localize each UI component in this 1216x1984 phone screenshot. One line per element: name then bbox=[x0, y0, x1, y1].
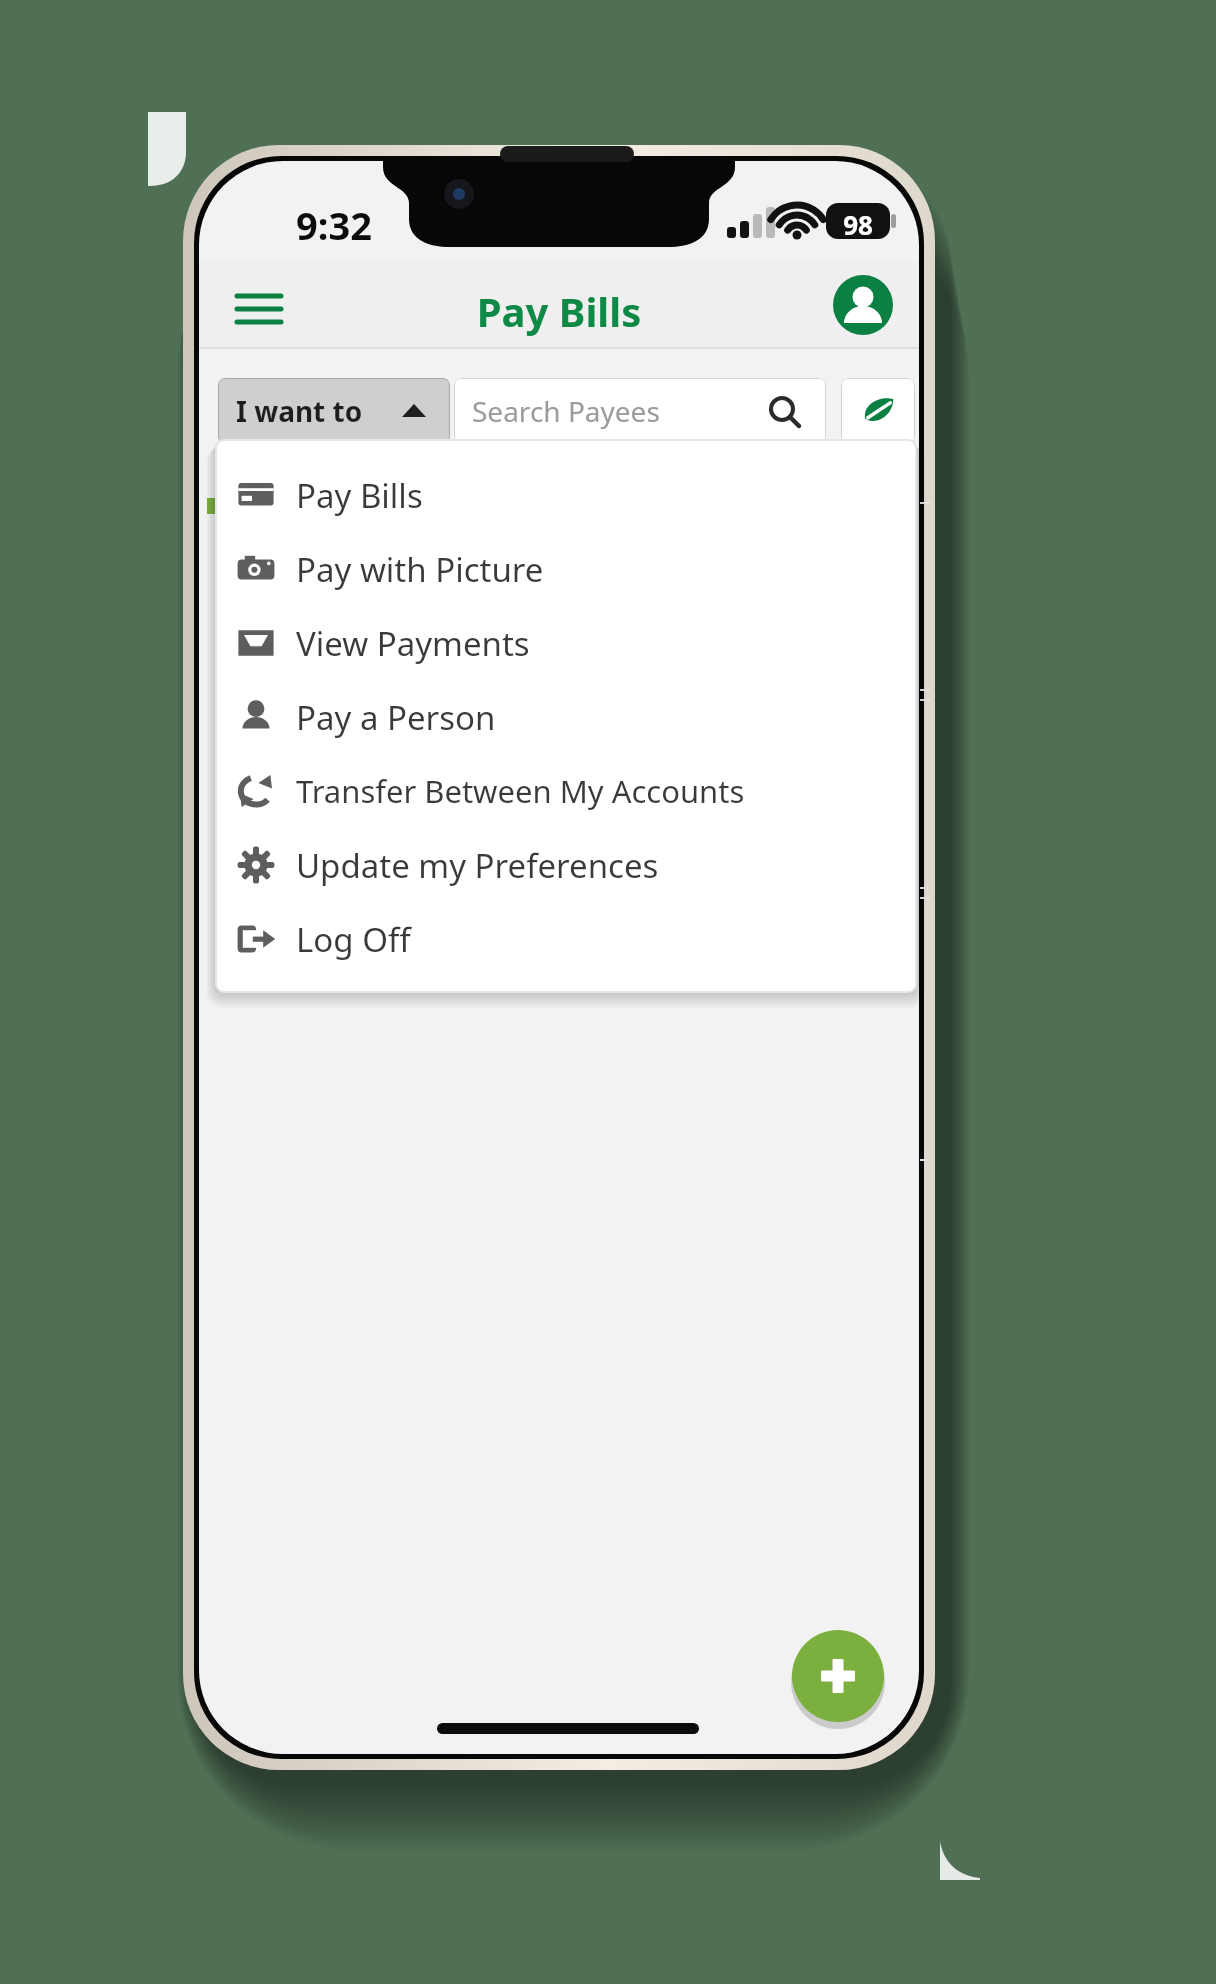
staticText: Pay a Person bbox=[296, 695, 496, 740]
button[interactable]: View Payments bbox=[216, 606, 916, 680]
staticText: Transfer Between My Accounts bbox=[296, 770, 745, 812]
staticText: Update my Preferences bbox=[296, 843, 659, 888]
button[interactable]: Pay with Picture bbox=[216, 532, 916, 606]
button[interactable]: Update my Preferences bbox=[216, 828, 916, 902]
staticText: Pay Bills bbox=[296, 473, 423, 518]
button[interactable]: Eco bbox=[841, 378, 915, 444]
staticText: I want to bbox=[236, 392, 363, 430]
button[interactable]: Profile bbox=[833, 275, 893, 335]
button[interactable]: Pay Bills bbox=[216, 458, 916, 532]
button[interactable]: Pay a Person bbox=[216, 680, 916, 754]
staticText: Search Payees bbox=[472, 392, 660, 430]
button[interactable]: Transfer Between My Accounts bbox=[216, 754, 916, 828]
staticText: 98 bbox=[834, 207, 882, 242]
staticText: Pay with Picture bbox=[296, 547, 544, 592]
button[interactable]: I want to bbox=[218, 378, 450, 444]
button[interactable]: Add payee bbox=[789, 1627, 887, 1725]
staticText: Log Off bbox=[296, 917, 411, 962]
staticText: 9:32 bbox=[296, 199, 372, 251]
button[interactable]: Log Off bbox=[216, 902, 916, 976]
staticText: View Payments bbox=[296, 621, 530, 666]
button[interactable]: Menu bbox=[228, 276, 290, 338]
button[interactable]: Search Payees bbox=[454, 378, 826, 444]
staticText: Pay Bills bbox=[199, 284, 919, 338]
